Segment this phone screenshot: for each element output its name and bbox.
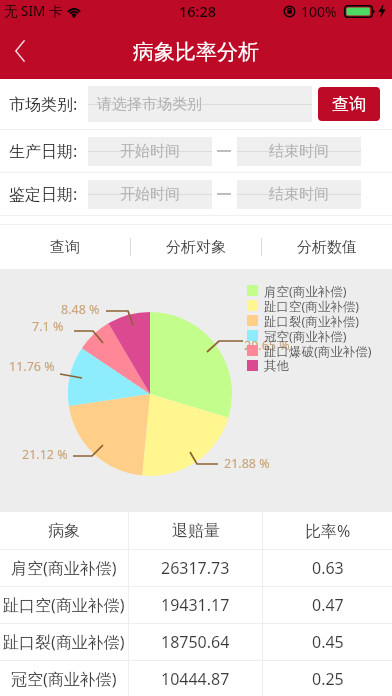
button[interactable]: 查询: [0, 225, 130, 269]
button[interactable]: Back: [0, 22, 40, 79]
button[interactable]: 结束时间: [237, 180, 361, 209]
staticText: 比率%: [305, 520, 351, 542]
staticText: 26317.73: [161, 557, 230, 579]
staticText: 肩空(商业补偿): [11, 557, 117, 579]
button[interactable]: 结束时间: [237, 137, 361, 166]
button[interactable]: 请选择市场类别: [88, 86, 312, 122]
staticText: 趾口裂(商业补偿): [3, 631, 125, 653]
staticText: 分析数值: [297, 238, 357, 257]
staticText: 分析对象: [166, 238, 226, 257]
staticText: 结束时间: [269, 185, 329, 204]
button[interactable]: 开始时间: [88, 180, 212, 209]
staticText: 开始时间: [120, 185, 180, 204]
staticText: 冠空(商业补偿): [11, 668, 117, 690]
staticText: 请选择市场类别: [97, 95, 202, 114]
staticText: 结束时间: [269, 142, 329, 161]
staticText: 0.45: [312, 631, 344, 653]
staticText: 21.88 %: [224, 455, 270, 472]
staticText: 趾口爆破(商业补偿): [264, 343, 372, 358]
staticText: 无 SIM 卡: [4, 2, 63, 20]
staticText: 趾口空(商业补偿): [3, 594, 125, 616]
staticText: 100%: [301, 2, 337, 21]
staticText: 病象: [48, 521, 80, 541]
staticText: 18750.64: [161, 631, 230, 653]
staticText: 7.1 %: [32, 318, 64, 335]
button[interactable]: 分析数值: [262, 225, 392, 269]
staticText: 10444.87: [161, 668, 230, 690]
staticText: 查询: [332, 94, 366, 115]
staticText: 其他: [264, 358, 289, 373]
staticText: 29.65 %: [244, 337, 290, 354]
staticText: 趾口空(商业补偿): [264, 298, 360, 313]
staticText: 21.12 %: [22, 446, 68, 463]
staticText: 病象比率分析: [133, 39, 259, 65]
staticText: 肩空(商业补偿): [264, 283, 347, 298]
staticText: 冠空(商业补偿): [264, 328, 347, 343]
staticText: 鉴定日期:: [9, 183, 78, 205]
button[interactable]: 开始时间: [88, 137, 212, 166]
staticText: 0.63: [312, 557, 344, 579]
staticText: 开始时间: [120, 142, 180, 161]
staticText: 查询: [50, 238, 80, 257]
staticText: 生产日期:: [9, 140, 78, 162]
button[interactable]: 分析对象: [131, 225, 261, 269]
staticText: 16:28: [179, 1, 217, 21]
staticText: 市场类别:: [9, 93, 78, 115]
staticText: 0.47: [312, 594, 344, 616]
staticText: 退赔量: [172, 521, 220, 541]
staticText: 19431.17: [161, 594, 230, 616]
staticText: 趾口裂(商业补偿): [264, 313, 360, 328]
staticText: 11.76 %: [9, 358, 55, 375]
staticText: 0.25: [312, 668, 344, 690]
staticText: 8.48 %: [61, 301, 100, 318]
button[interactable]: 查询: [318, 87, 380, 121]
